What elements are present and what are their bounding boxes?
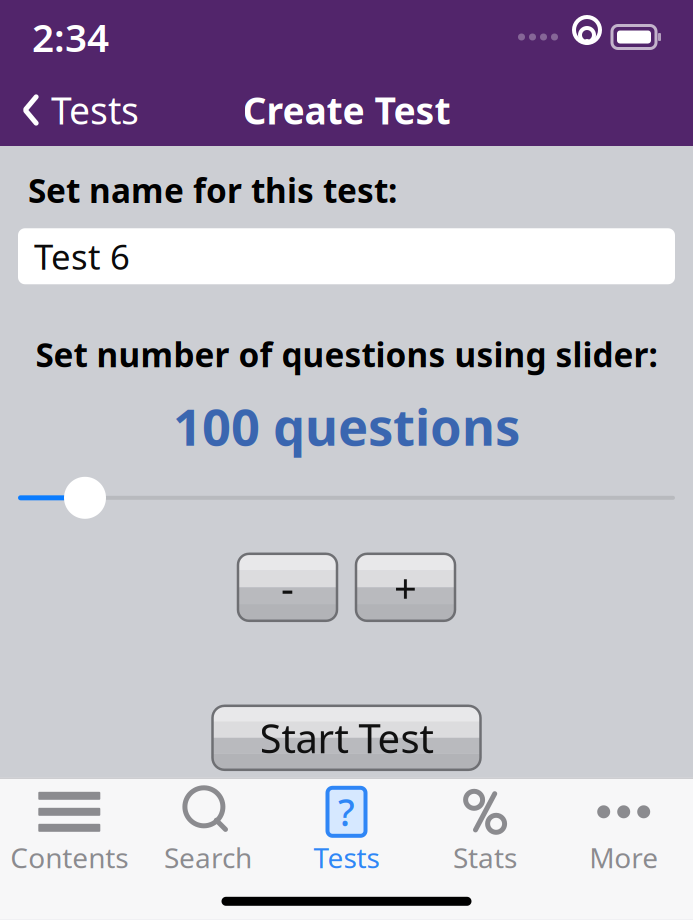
staticText: More (589, 839, 658, 876)
staticText: - (281, 561, 294, 614)
staticText: Start Test (259, 711, 433, 764)
staticText: Stats (453, 839, 517, 876)
button[interactable]: + (356, 554, 455, 621)
staticText: Test 6 (34, 233, 130, 279)
staticText: Set number of questions using slider: (35, 332, 657, 377)
staticText: Contents (10, 839, 128, 876)
staticText: + (394, 561, 417, 614)
staticText: Tests (313, 839, 379, 876)
button[interactable]: More (554, 779, 693, 882)
staticText: 100 questions (173, 392, 520, 460)
staticText: Search (164, 839, 252, 876)
staticText: Tests (51, 85, 139, 135)
button[interactable]: Tests (0, 75, 139, 145)
button[interactable]: Start Test (212, 706, 480, 770)
staticText: ? (338, 787, 355, 837)
staticText: Set name for this test: (28, 168, 397, 212)
button[interactable]: Contents (0, 779, 139, 882)
button[interactable]: ? (277, 779, 416, 882)
staticText: 2:34 (32, 11, 109, 63)
button[interactable]: Stats (416, 779, 554, 882)
button[interactable]: - (238, 554, 337, 621)
button[interactable]: Search (139, 779, 277, 882)
staticText: Create Test (242, 85, 450, 135)
